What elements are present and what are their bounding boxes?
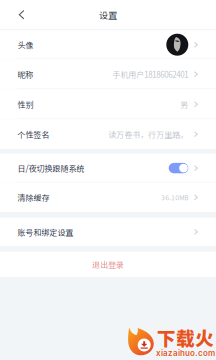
button[interactable]: 账号和绑定设置 bbox=[0, 218, 216, 246]
staticText: 下载火 bbox=[157, 324, 214, 351]
button[interactable]: 个性签名 bbox=[0, 119, 216, 149]
staticText: 退出登录 bbox=[92, 259, 124, 270]
staticText: 头像 bbox=[18, 39, 34, 50]
staticText: 性别 bbox=[18, 98, 34, 110]
staticText: 个性签名 bbox=[18, 128, 50, 140]
staticText: 手机用户18186062401 bbox=[112, 68, 188, 80]
staticText: 账号和绑定设置 bbox=[18, 226, 74, 238]
button[interactable]: Back bbox=[9, 2, 35, 28]
button[interactable]: 日/夜切换跟随系统 bbox=[0, 154, 216, 183]
staticText: 男 bbox=[180, 98, 188, 110]
button[interactable]: 退出登录 bbox=[0, 252, 216, 277]
button[interactable]: 头像 bbox=[0, 30, 216, 59]
button[interactable]: 性别 bbox=[0, 89, 216, 119]
staticText: 设置 bbox=[99, 8, 117, 21]
staticText: 36.10MB bbox=[161, 192, 188, 202]
button[interactable]: 清除缓存 bbox=[0, 183, 216, 212]
staticText: 清除缓存 bbox=[18, 192, 50, 203]
staticText: 日/夜切换跟随系统 bbox=[18, 162, 85, 174]
staticText: 读万卷书，行万里路。 bbox=[108, 128, 188, 140]
staticText: 昵称 bbox=[18, 68, 34, 80]
staticText: xiazaihuo.com bbox=[156, 348, 215, 358]
button[interactable]: 昵称 bbox=[0, 59, 216, 89]
